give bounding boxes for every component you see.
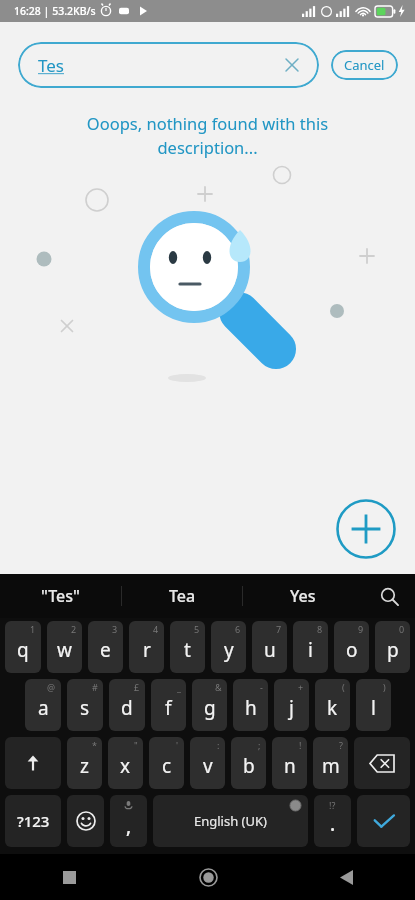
button[interactable]: m xyxy=(313,737,348,789)
staticText: , xyxy=(126,813,132,839)
button[interactable]: Yes xyxy=(243,574,363,618)
button[interactable]: Home xyxy=(139,854,277,900)
staticText: a xyxy=(38,695,49,721)
staticText: 5 xyxy=(194,623,200,635)
button[interactable]: e xyxy=(88,621,123,673)
staticText: Cancel xyxy=(344,56,385,74)
staticText: r xyxy=(143,637,151,663)
button[interactable]: d xyxy=(109,679,145,731)
button[interactable]: l xyxy=(356,679,391,731)
staticText: 9 xyxy=(358,623,364,635)
button[interactable]: k xyxy=(315,679,350,731)
staticText: ; xyxy=(258,739,261,751)
staticText: l xyxy=(371,695,376,721)
button[interactable]: Period xyxy=(314,795,351,847)
staticText: £ xyxy=(134,681,140,693)
staticText: * xyxy=(92,739,97,751)
staticText: 7 xyxy=(276,623,282,635)
button[interactable]: ?123 xyxy=(5,795,61,847)
staticText: 2 xyxy=(71,623,77,635)
button[interactable]: Tes xyxy=(18,42,319,88)
button[interactable]: r xyxy=(129,621,164,673)
staticText: 8 xyxy=(317,623,323,635)
staticText: b xyxy=(243,753,255,779)
staticText: ' xyxy=(176,739,179,751)
button[interactable]: c xyxy=(149,737,184,789)
staticText: n xyxy=(284,753,296,779)
staticText: i xyxy=(308,637,313,663)
button[interactable]: q xyxy=(5,621,41,673)
button[interactable]: Shift xyxy=(5,737,61,789)
button[interactable]: Backspace xyxy=(354,737,410,789)
button[interactable]: j xyxy=(274,679,309,731)
button[interactable]: o xyxy=(334,621,369,673)
button[interactable]: i xyxy=(293,621,328,673)
button[interactable]: t xyxy=(170,621,205,673)
button[interactable]: Add xyxy=(335,498,397,560)
button[interactable]: Back xyxy=(277,854,415,900)
staticText: c xyxy=(162,753,172,779)
staticText: h xyxy=(245,695,257,721)
staticText: @ xyxy=(47,681,56,693)
button[interactable]: Comma xyxy=(110,795,147,847)
button[interactable]: y xyxy=(211,621,246,673)
staticText: & xyxy=(215,681,222,693)
button[interactable]: p xyxy=(375,621,410,673)
staticText: d xyxy=(121,695,133,721)
button[interactable]: Tea xyxy=(122,574,242,618)
button[interactable]: Space, English (UK) xyxy=(153,795,308,847)
staticText: q xyxy=(17,637,29,663)
button[interactable]: Clear search xyxy=(279,52,305,78)
staticText: x xyxy=(120,753,131,779)
button[interactable]: g xyxy=(192,679,227,731)
staticText: v xyxy=(203,753,213,779)
staticText: . xyxy=(330,811,336,837)
button[interactable]: Emoji xyxy=(67,795,104,847)
staticText: 4 xyxy=(153,623,159,635)
button[interactable]: f xyxy=(151,679,186,731)
button[interactable]: "Tes" xyxy=(0,574,121,618)
staticText: u xyxy=(264,637,276,663)
staticText: g xyxy=(204,695,216,721)
staticText: + xyxy=(298,681,304,693)
staticText: : xyxy=(217,739,220,751)
button[interactable]: a xyxy=(25,679,61,731)
button[interactable]: h xyxy=(233,679,268,731)
staticText: Tea xyxy=(169,585,196,607)
staticText: e xyxy=(100,637,111,663)
button[interactable]: Cancel xyxy=(331,50,398,80)
staticText: ) xyxy=(383,681,386,693)
staticText: o xyxy=(346,637,358,663)
staticText: Tes xyxy=(38,54,64,77)
staticText: 0 xyxy=(399,623,405,635)
button[interactable]: Recents xyxy=(0,854,139,900)
staticText: p xyxy=(387,637,399,663)
button[interactable]: b xyxy=(231,737,266,789)
staticText: 1 xyxy=(30,623,36,635)
button[interactable]: u xyxy=(252,621,287,673)
staticText: t xyxy=(184,637,191,663)
staticText: 3 xyxy=(112,623,118,635)
staticText: - xyxy=(260,681,263,693)
staticText: _ xyxy=(177,681,181,693)
staticText: ( xyxy=(342,681,345,693)
staticText: Ooops, nothing found with this descripti… xyxy=(40,112,375,159)
staticText: "Tes" xyxy=(41,585,80,607)
staticText: j xyxy=(289,695,294,721)
staticText: # xyxy=(92,681,98,693)
staticText: z xyxy=(80,753,89,779)
staticText: !? xyxy=(329,799,336,811)
staticText: f xyxy=(165,695,172,721)
button[interactable]: Enter xyxy=(357,795,410,847)
button[interactable]: w xyxy=(47,621,82,673)
staticText: ?123 xyxy=(17,811,50,831)
button[interactable]: z xyxy=(67,737,102,789)
staticText: k xyxy=(327,695,338,721)
button[interactable]: n xyxy=(272,737,307,789)
staticText: " xyxy=(134,739,138,751)
button[interactable]: Search suggestions xyxy=(363,574,415,618)
button[interactable]: x xyxy=(108,737,143,789)
button[interactable]: s xyxy=(67,679,103,731)
button[interactable]: v xyxy=(190,737,225,789)
staticText: w xyxy=(57,637,72,663)
